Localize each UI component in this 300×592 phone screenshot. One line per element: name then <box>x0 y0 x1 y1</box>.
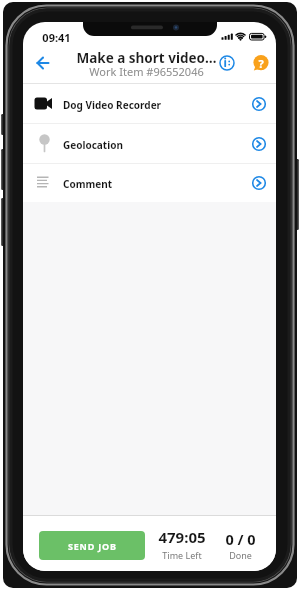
staticText: Dog Video Recorder <box>63 98 162 112</box>
staticText: Comment <box>63 177 112 191</box>
staticText: SEND JOB <box>68 540 117 552</box>
staticText: Done <box>229 549 252 561</box>
staticText: Work Item #96552046 <box>89 64 204 79</box>
button[interactable] <box>31 50 57 76</box>
staticText: 479:05 <box>158 527 206 547</box>
button[interactable]: Dog Video Recorder <box>23 84 276 123</box>
button[interactable]: ? <box>252 54 270 72</box>
staticText: Geolocation <box>63 138 123 152</box>
staticText: 0 / 0 <box>225 529 256 549</box>
button[interactable]: SEND JOB <box>39 531 145 560</box>
staticText: Make a short video… <box>76 49 217 67</box>
button[interactable]: Geolocation <box>23 124 276 163</box>
button[interactable] <box>218 54 236 72</box>
staticText: 09:41 <box>42 30 71 45</box>
button[interactable]: Comment <box>23 164 276 202</box>
staticText: ? <box>258 56 264 71</box>
staticText: Time Left <box>162 549 202 561</box>
